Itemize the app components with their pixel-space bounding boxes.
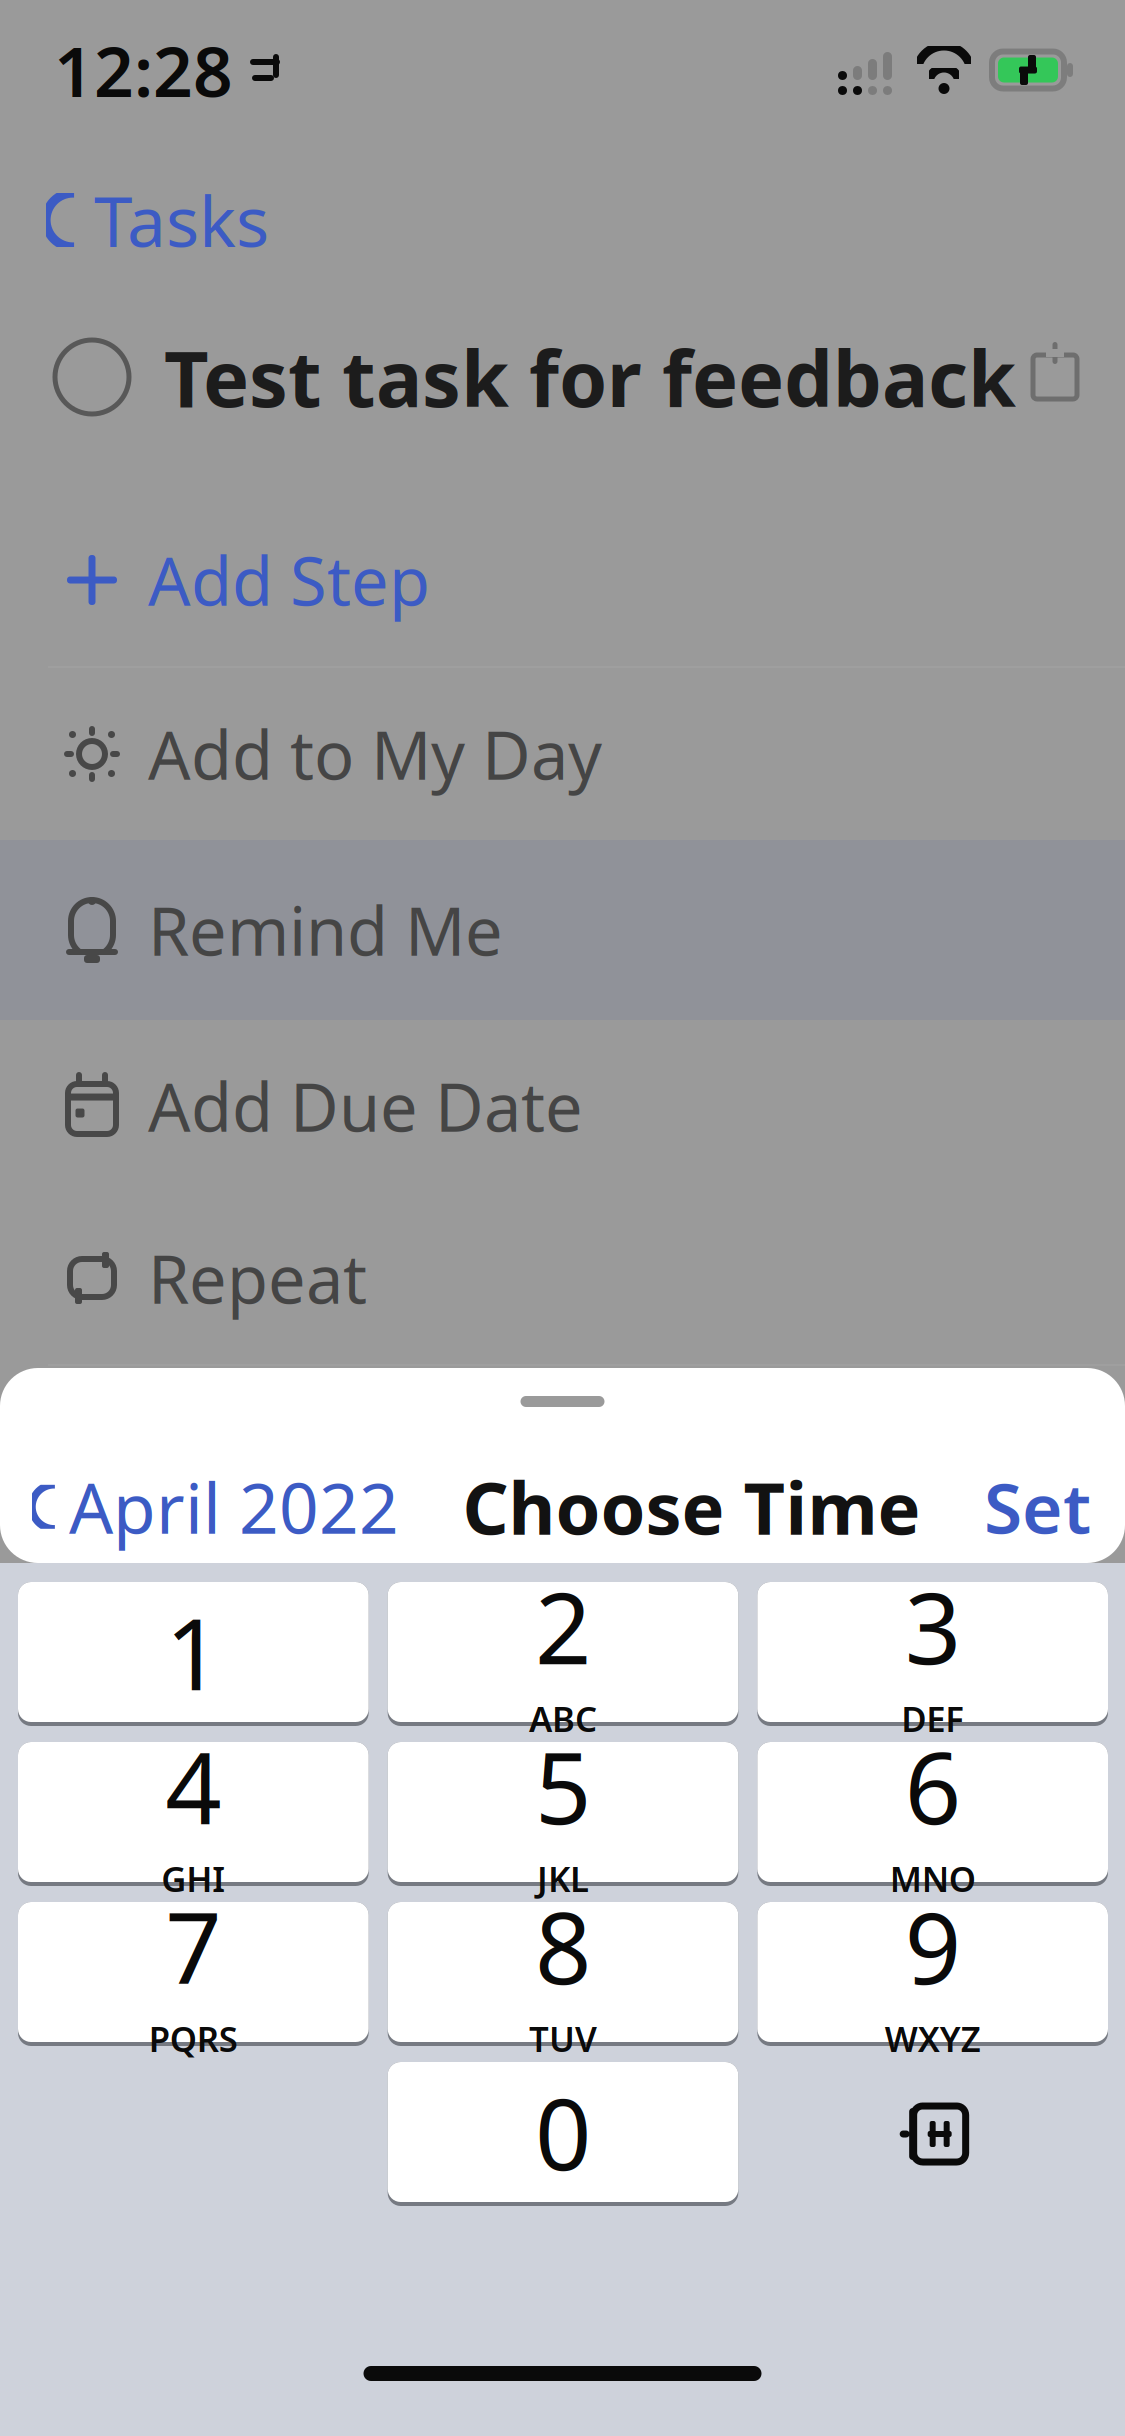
staticText: Add to My Day [148,710,602,798]
staticText: DEF [901,1695,964,1741]
staticText: 7 [165,1880,221,2011]
staticText: Add File [148,1408,397,1496]
button[interactable]: Add to My Day [0,668,1125,840]
button[interactable]: 6 [757,1742,1108,1886]
staticText: 8 [535,1880,591,2011]
staticText: PQRS [149,2015,238,2061]
staticText: 1 [165,1586,221,1717]
button[interactable]: Delete [757,2062,1108,2206]
button[interactable]: 1 [18,1582,369,1726]
staticText: 3 [905,1560,961,1691]
staticText: ABC [529,1695,597,1741]
staticText: 12:28 [54,24,233,116]
button[interactable]: 2 [388,1582,738,1726]
button[interactable]: Set [984,1461,1091,1553]
button[interactable]: 5 [388,1742,738,1886]
button[interactable]: 9 [757,1902,1108,2046]
staticText: 9 [905,1880,961,2011]
staticText: 4 [165,1720,221,1851]
staticText: Remind Me [148,886,503,974]
button[interactable]: Add Step [0,494,1125,666]
staticText: 5 [535,1720,591,1851]
staticText: April 2022 [69,1461,399,1553]
staticText: Choose Time [462,1459,920,1555]
staticText: WXYZ [885,2015,981,2061]
button[interactable]: 4 [18,1742,369,1886]
button[interactable]: 0 [388,2062,738,2206]
staticText: 0 [535,2066,591,2197]
button[interactable]: Remind Me [0,840,1125,1020]
staticText: 6 [905,1720,961,1851]
staticText: Repeat [148,1234,367,1322]
button[interactable]: 7 [18,1902,369,2046]
staticText: TUV [529,2015,597,2061]
staticText: MNO [890,1855,976,1901]
button[interactable]: Test task for feedback [0,322,1125,432]
staticText: Tasks [94,174,269,266]
button[interactable]: Add Due Date [0,1020,1125,1192]
staticText: JKL [537,1855,589,1901]
staticText: GHI [161,1855,225,1901]
button[interactable]: Tasks [0,180,1125,260]
staticText: Test task for feedback [164,326,1016,428]
button[interactable]: April 2022 [32,1461,399,1553]
button[interactable]: Add File [0,1366,1125,1538]
staticText: Add Due Date [148,1062,583,1150]
staticText: 2 [535,1560,591,1691]
button[interactable]: Repeat [0,1192,1125,1364]
staticText: Add Step [148,536,430,624]
button[interactable]: 8 [388,1902,738,2046]
button[interactable]: 3 [757,1582,1108,1726]
staticText: Set [984,1461,1091,1553]
